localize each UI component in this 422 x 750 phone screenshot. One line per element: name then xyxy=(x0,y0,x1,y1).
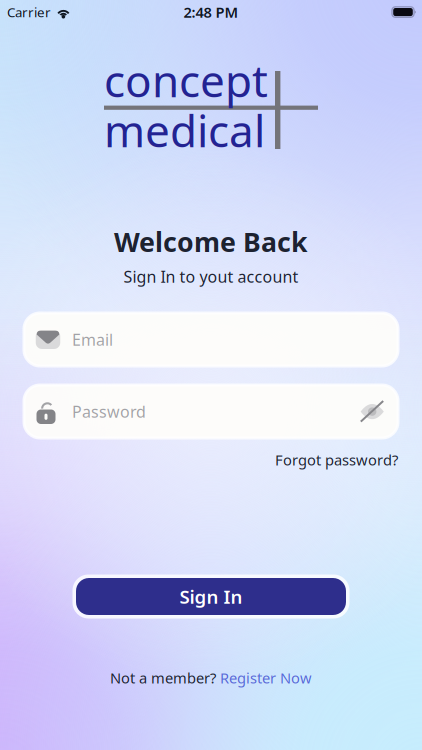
staticText: Password xyxy=(72,401,146,422)
staticText: Register Now xyxy=(220,668,312,687)
staticText: Email xyxy=(72,329,113,350)
button[interactable]: Sign In xyxy=(72,574,349,618)
button[interactable]: Password xyxy=(24,385,398,438)
button[interactable]: Forgot password? xyxy=(263,444,410,475)
button[interactable]: Register Now xyxy=(220,668,312,687)
staticText: Carrier xyxy=(7,3,51,21)
staticText: 2:48 PM xyxy=(183,2,238,22)
staticText: Forgot password? xyxy=(275,450,398,469)
staticText: Welcome Back xyxy=(114,224,308,259)
staticText: medical xyxy=(104,101,265,159)
staticText: Sign In xyxy=(179,584,242,609)
staticText: Sign In to yout account xyxy=(123,266,298,287)
staticText: concept xyxy=(104,51,268,109)
staticText: Not a member? xyxy=(110,668,220,687)
